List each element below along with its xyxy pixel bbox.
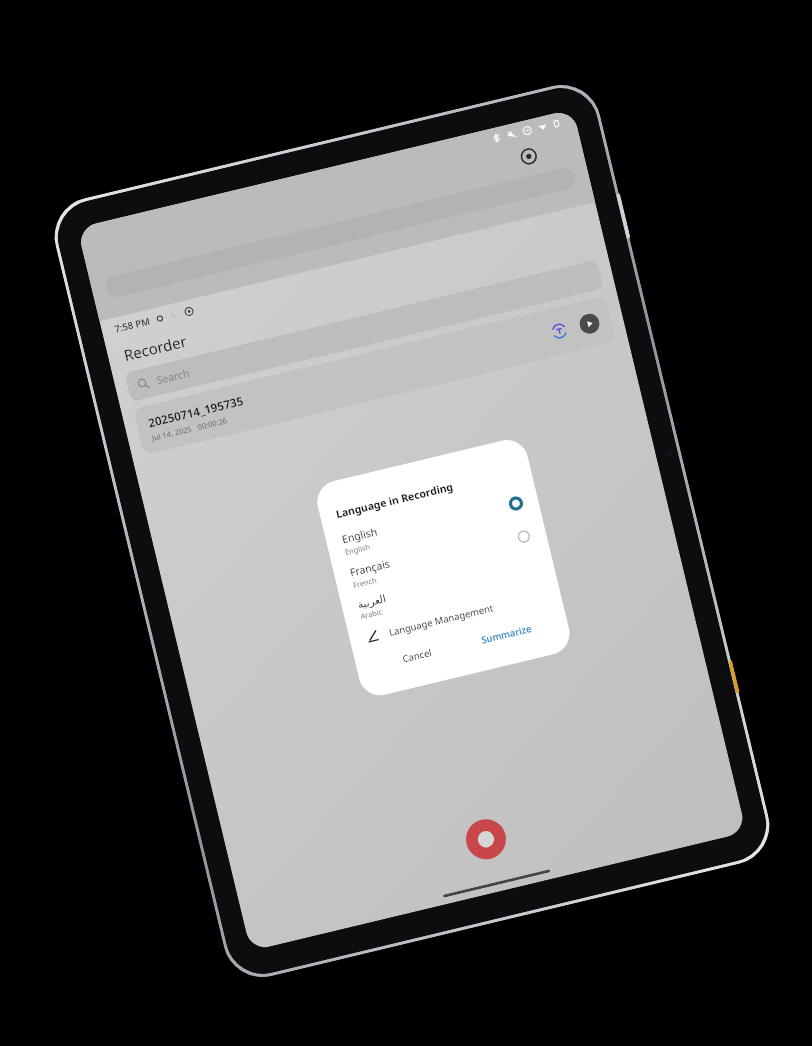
staticText: Summarize <box>480 622 533 647</box>
staticText: Jul 14, 2025 <box>151 424 193 443</box>
staticText: Recorder <box>122 331 189 365</box>
button[interactable]: Quick settings <box>517 144 541 168</box>
staticText: 20250714_195735 <box>147 393 245 431</box>
staticText: Language in Recording <box>334 479 454 521</box>
staticText: Français <box>348 556 391 579</box>
staticText: Search <box>155 366 191 387</box>
staticText: العربية <box>356 592 387 610</box>
staticText: 00:00:26 <box>197 415 228 432</box>
staticText: Arabic <box>359 606 384 621</box>
button[interactable]: Search <box>124 259 604 402</box>
staticText: Cancel <box>401 646 433 665</box>
button[interactable]: العربية <box>356 556 541 621</box>
button[interactable]: Language Management <box>364 588 546 645</box>
button[interactable]: Cancel <box>370 635 464 677</box>
button[interactable]: Transcribe <box>546 318 573 344</box>
staticText: 7:58 PM <box>113 315 151 336</box>
staticText: English <box>340 524 379 546</box>
button[interactable]: Français <box>348 523 533 590</box>
button[interactable]: 20250714_195735 <box>133 295 617 455</box>
button[interactable]: English <box>340 490 525 557</box>
staticText: Language Management <box>388 601 495 639</box>
button[interactable]: Play <box>577 312 602 336</box>
staticText: English <box>344 541 371 557</box>
button[interactable]: Summarize <box>459 613 554 655</box>
button[interactable]: Record <box>459 813 513 866</box>
staticText: French <box>352 575 378 590</box>
